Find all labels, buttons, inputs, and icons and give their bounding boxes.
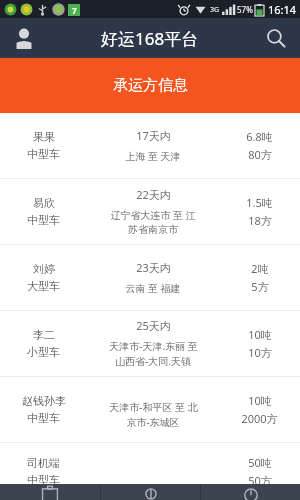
button[interactable]: 赵钱孙李: [0, 377, 300, 442]
staticText: 22天内: [136, 187, 171, 202]
staticText: 50吨: [248, 455, 272, 470]
staticText: 山西省-大同.天镇: [115, 354, 191, 368]
staticText: 50方: [248, 473, 272, 488]
button[interactable]: 刘婷: [0, 245, 300, 310]
button[interactable]: 司机端: [0, 443, 300, 500]
staticText: 16:14: [268, 2, 297, 17]
staticText: 易欣: [33, 196, 55, 210]
staticText: 18方: [248, 213, 272, 228]
staticText: 承运方信息: [113, 76, 188, 95]
button[interactable]: Profile: [201, 484, 300, 500]
staticText: 天津市-和平区 至 北: [109, 400, 198, 414]
staticText: 天津市-天津.东丽 至: [109, 339, 198, 353]
staticText: 80方: [248, 147, 272, 162]
staticText: 辽宁省大连市 至 江: [110, 208, 196, 222]
staticText: 7: [72, 5, 77, 16]
staticText: 赵钱孙李: [22, 394, 66, 408]
staticText: 云南 至 福建: [125, 281, 181, 295]
staticText: 57%: [237, 4, 253, 15]
staticText: 京市-东城区: [126, 415, 180, 429]
button[interactable]: 承运方信息: [0, 58, 300, 113]
button[interactable]: Home: [0, 484, 100, 500]
staticText: 中型车: [27, 147, 60, 161]
button[interactable]: 果果: [0, 113, 300, 178]
staticText: 上海 至 天津: [125, 149, 181, 163]
staticText: 1.5吨: [246, 195, 273, 210]
staticText: 17天内: [136, 128, 171, 143]
staticText: 10吨: [248, 327, 272, 342]
staticText: 5方: [251, 279, 269, 294]
staticText: 2吨: [251, 261, 269, 276]
staticText: 刘婷: [33, 262, 55, 276]
staticText: 10吨: [248, 393, 272, 408]
staticText: 小型车: [27, 345, 60, 359]
staticText: 中型车: [27, 411, 60, 425]
staticText: 6.8吨: [246, 129, 273, 144]
staticText: 好运168平台: [101, 27, 199, 50]
staticText: 果果: [33, 130, 55, 144]
staticText: 2000方: [241, 411, 278, 426]
staticText: 中型车: [27, 473, 60, 487]
staticText: 10方: [248, 345, 272, 360]
button[interactable]: Orders: [101, 484, 200, 500]
staticText: 司机端: [27, 456, 60, 470]
button[interactable]: Search: [260, 22, 292, 54]
staticText: 3G: [210, 5, 220, 15]
staticText: 23天内: [136, 260, 171, 275]
button[interactable]: 易欣: [0, 179, 300, 244]
button[interactable]: 李二: [0, 311, 300, 376]
button[interactable]: Profile: [8, 22, 40, 54]
staticText: 李二: [33, 328, 55, 342]
staticText: 大型车: [27, 279, 60, 293]
staticText: 苏省南京市: [128, 223, 178, 236]
staticText: 中型车: [27, 213, 60, 227]
staticText: 25天内: [136, 318, 171, 333]
